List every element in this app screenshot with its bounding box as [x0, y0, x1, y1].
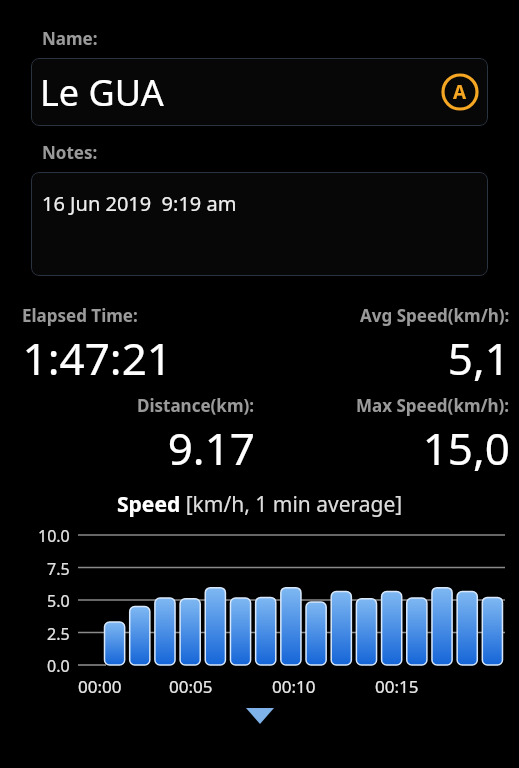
staticText: 15,0 — [422, 418, 510, 478]
staticText: 00:15 — [375, 675, 419, 698]
staticText: Le GUA — [40, 68, 438, 117]
button[interactable]: Scroll down — [240, 705, 280, 727]
button[interactable]: Le GUA — [31, 58, 488, 126]
staticText: 9.17 — [167, 418, 255, 478]
staticText: Elapsed Time: — [22, 304, 138, 327]
staticText: 2.5 — [47, 623, 70, 645]
button[interactable]: 16 Jun 2019 9:19 am — [31, 172, 488, 276]
button[interactable]: Speed chart — [0, 525, 519, 675]
staticText: Max Speed(km/h): — [356, 394, 510, 417]
staticText: 00:00 — [78, 675, 122, 698]
staticText: A — [453, 79, 467, 105]
staticText: 5.0 — [47, 590, 70, 612]
staticText: Speed [km/h, 1 min average] — [117, 490, 403, 519]
staticText: 5,1 — [447, 328, 510, 388]
staticText: 1:47:21 — [22, 328, 172, 388]
staticText: Distance(km): — [137, 394, 255, 417]
staticText: Notes: — [42, 141, 98, 164]
button[interactable]: Auto — [438, 70, 482, 114]
staticText: 10.0 — [38, 525, 70, 547]
staticText: Avg Speed(km/h): — [360, 304, 510, 327]
staticText: 00:05 — [169, 675, 213, 698]
staticText: 7.5 — [47, 558, 70, 580]
staticText: 00:10 — [272, 675, 316, 698]
staticText: 0.0 — [47, 655, 70, 677]
staticText: Name: — [42, 27, 98, 50]
staticText: 16 Jun 2019 9:19 am — [42, 190, 237, 217]
